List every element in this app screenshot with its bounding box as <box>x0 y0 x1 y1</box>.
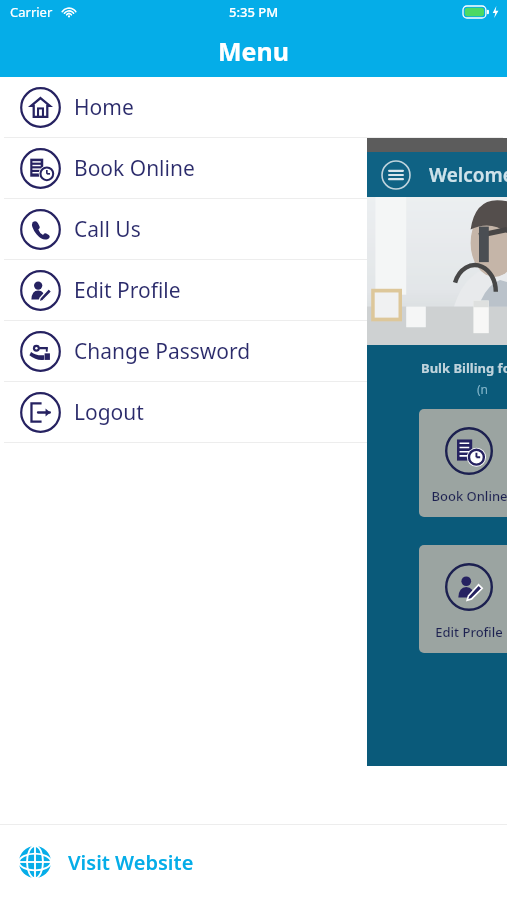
button[interactable]: Visit Website <box>0 824 507 900</box>
staticText: Change Password <box>74 337 251 366</box>
staticText: Carrier <box>10 3 53 21</box>
staticText: Book Online <box>431 487 507 505</box>
button[interactable]: Book Online <box>419 409 507 517</box>
button[interactable]: Home <box>0 77 507 137</box>
staticText: Call Us <box>74 215 141 244</box>
button[interactable]: Book Online <box>0 138 507 198</box>
staticText: Home <box>74 93 134 122</box>
staticText: Edit Profile <box>435 623 503 641</box>
staticText: Logout <box>74 398 144 427</box>
button[interactable]: Change Password <box>0 321 507 381</box>
button[interactable]: Call Us <box>0 199 507 259</box>
button[interactable]: Menu <box>381 160 411 190</box>
staticText: 5:35 PM <box>229 3 279 21</box>
button[interactable]: Edit Profile <box>419 545 507 653</box>
staticText: Bulk Billing for <box>421 359 507 377</box>
staticText: Edit Profile <box>74 276 181 305</box>
staticText: Menu <box>218 34 290 68</box>
button[interactable]: Edit Profile <box>0 260 507 320</box>
staticText: Welcome <box>429 162 507 188</box>
staticText: Book Online <box>74 154 195 183</box>
staticText: Visit Website <box>68 849 194 876</box>
staticText: (n <box>477 381 489 397</box>
button[interactable]: Logout <box>0 382 507 442</box>
